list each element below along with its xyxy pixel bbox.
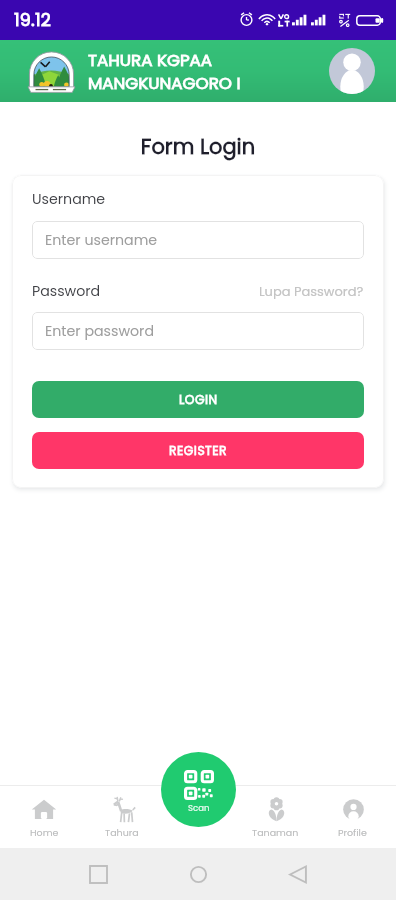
staticText: Profile [338, 826, 367, 839]
button[interactable]: Tahura [83, 785, 160, 848]
button[interactable]: Tanaman [237, 785, 314, 848]
staticText: Form Login [0, 132, 396, 161]
staticText: Tanaman [252, 826, 299, 839]
button[interactable]: LOGIN [32, 381, 364, 418]
button[interactable]: Home [5, 785, 83, 848]
button[interactable]: Scan [161, 752, 236, 827]
staticText: REGISTER [169, 442, 228, 459]
staticText: Password [32, 281, 101, 301]
button[interactable]: Lupa Password? [259, 282, 364, 300]
button[interactable]: Enter username [32, 221, 364, 259]
staticText: Tahura [105, 826, 139, 839]
staticText: 19.12 [14, 8, 51, 33]
button[interactable]: REGISTER [32, 432, 364, 469]
staticText: MANGKUNAGORO I [88, 71, 241, 94]
staticText: LOGIN [179, 391, 218, 408]
staticText: Enter password [45, 321, 154, 341]
button[interactable]: Profile [314, 785, 391, 848]
button[interactable]: Enter password [32, 312, 364, 350]
staticText: Enter username [45, 230, 158, 250]
staticText: Lupa Password? [259, 282, 364, 300]
button[interactable]: Back [278, 854, 318, 894]
staticText: Scan [188, 802, 210, 814]
staticText: Username [32, 189, 106, 209]
staticText: TAHURA KGPAA [88, 48, 213, 71]
button[interactable]: Home [178, 854, 218, 894]
staticText: Home [30, 826, 59, 839]
button[interactable]: Recents [78, 854, 118, 894]
button[interactable]: Profile [329, 48, 375, 94]
